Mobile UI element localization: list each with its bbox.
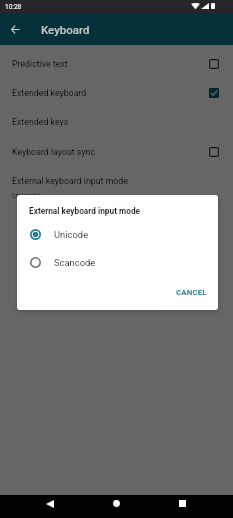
button[interactable]: Unicode [17,221,218,248]
staticText: External keyboard input mode [12,176,128,186]
staticText: CANCEL [176,288,207,297]
button[interactable]: Keyboard layout sync [0,137,233,166]
button[interactable]: Extended keyboard [0,78,233,107]
staticText: Keyboard layout sync [12,147,209,157]
staticText: Scancode [54,257,96,268]
button[interactable]: CANCEL [164,283,218,302]
button[interactable]: External keyboard input mode [0,166,233,204]
staticText: External keyboard input mode [29,206,141,216]
staticText: Unicode [54,229,89,240]
staticText: Extended keyboard [12,88,209,98]
staticText: Extended keys [12,117,219,127]
button[interactable]: Back [0,13,32,45]
staticText: Unicode [12,191,41,200]
staticText: Predictive text [12,59,209,69]
staticText: 10:28 [5,3,22,11]
button[interactable]: Scancode [17,249,218,276]
button[interactable]: Predictive text [0,49,233,78]
staticText: Keyboard [41,23,90,36]
button[interactable]: Extended keys [0,107,233,136]
